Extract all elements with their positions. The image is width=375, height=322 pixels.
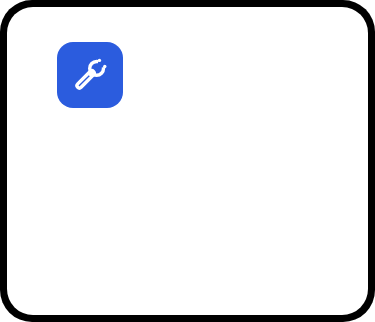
button[interactable]: Tools [57, 42, 123, 108]
